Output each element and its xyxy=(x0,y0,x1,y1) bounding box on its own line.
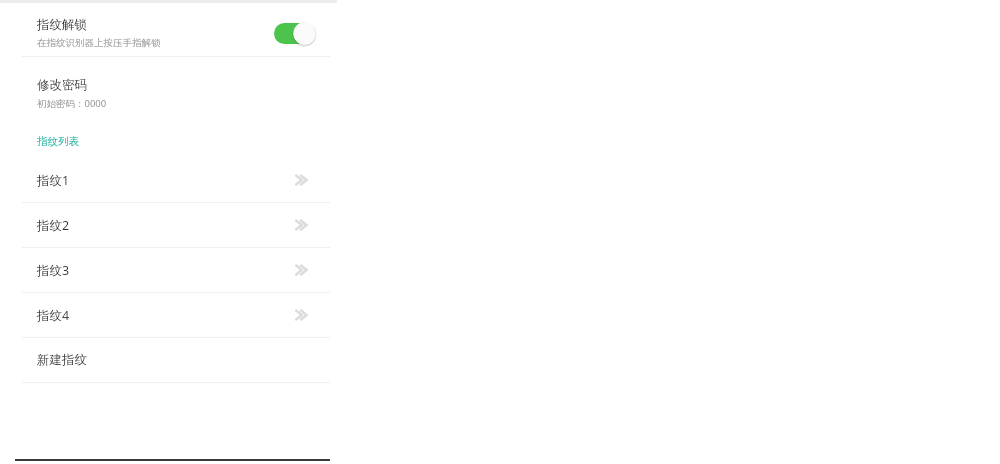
button[interactable]: 新建指纹 xyxy=(0,338,337,382)
staticText: 新建指纹 xyxy=(37,352,337,368)
staticText: 指纹1 xyxy=(37,172,290,189)
staticText: 修改密码 xyxy=(37,77,87,93)
staticText: 指纹解锁 xyxy=(37,17,87,33)
button[interactable]: 指纹3 xyxy=(0,248,337,292)
staticText: 在指纹识别器上按压手指解锁 xyxy=(37,37,161,49)
button[interactable]: Fingerprint unlock toggle xyxy=(274,20,317,46)
staticText: 初始密码：0000 xyxy=(37,97,107,110)
button[interactable]: 修改密码 xyxy=(0,70,337,116)
button[interactable]: 指纹1 xyxy=(0,158,337,202)
button[interactable]: 指纹4 xyxy=(0,293,337,337)
staticText: 指纹3 xyxy=(37,262,290,279)
staticText: 指纹4 xyxy=(37,307,290,324)
button[interactable]: 指纹解锁 xyxy=(0,10,337,56)
button[interactable]: 指纹2 xyxy=(0,203,337,247)
staticText: 指纹2 xyxy=(37,217,290,234)
staticText: 指纹列表 xyxy=(37,135,79,148)
